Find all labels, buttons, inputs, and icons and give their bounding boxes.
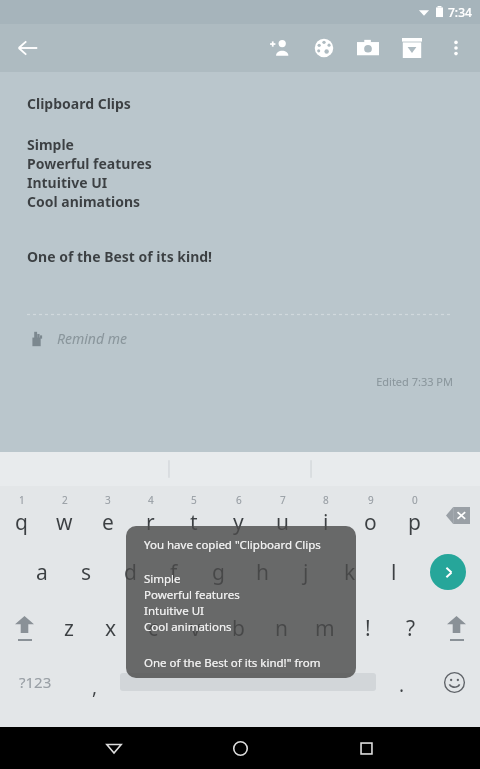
button[interactable]: 6: [216, 486, 260, 544]
staticText: n: [275, 614, 288, 643]
staticText: 0: [412, 493, 418, 507]
button[interactable]: Recents: [342, 727, 390, 769]
staticText: 2: [62, 493, 68, 507]
staticText: You have copied "Clipboard Clips: [144, 537, 321, 553]
staticText: 5: [191, 493, 197, 507]
staticText: u: [276, 508, 289, 537]
button[interactable]: Back: [90, 727, 138, 769]
button[interactable]: 1: [0, 486, 43, 544]
staticText: 7: [280, 493, 286, 507]
button[interactable]: Emoji: [428, 656, 480, 708]
staticText: a: [36, 558, 48, 587]
staticText: w: [56, 508, 73, 537]
staticText: 7:34: [448, 4, 472, 20]
staticText: 3: [105, 493, 111, 507]
staticText: s: [81, 558, 92, 587]
button[interactable]: f: [152, 544, 196, 600]
button[interactable]: ?123: [0, 656, 70, 708]
staticText: Remind me: [57, 329, 127, 348]
button[interactable]: z: [48, 600, 90, 656]
button[interactable]: k: [328, 544, 372, 600]
button[interactable]: b: [217, 600, 260, 656]
staticText: Powerful features: [27, 154, 152, 173]
staticText: t: [190, 508, 198, 537]
staticText: x: [105, 614, 117, 643]
staticText: Powerful features: [144, 587, 240, 603]
staticText: c: [148, 614, 159, 643]
button[interactable]: Delete: [436, 486, 480, 544]
button[interactable]: 5: [172, 486, 216, 544]
button[interactable]: s: [64, 544, 108, 600]
staticText: d: [124, 558, 137, 587]
staticText: Simple: [144, 571, 181, 587]
button[interactable]: ?: [389, 600, 432, 656]
staticText: f: [170, 558, 178, 587]
button[interactable]: n: [260, 600, 303, 656]
staticText: .: [399, 672, 405, 698]
staticText: Simple: [27, 135, 74, 154]
button[interactable]: Enter: [416, 544, 480, 600]
staticText: Edited 7:33 PM: [27, 374, 453, 389]
staticText: h: [256, 558, 269, 587]
button[interactable]: Remind me: [27, 329, 127, 348]
button[interactable]: Add collaborator: [258, 26, 302, 70]
button[interactable]: x: [90, 600, 132, 656]
button[interactable]: j: [284, 544, 328, 600]
button[interactable]: a: [20, 544, 64, 600]
button[interactable]: !: [346, 600, 389, 656]
button[interactable]: Space: [120, 656, 376, 708]
button[interactable]: 2: [43, 486, 86, 544]
staticText: l: [391, 558, 397, 587]
staticText: q: [15, 508, 28, 537]
staticText: Intuitive UI: [144, 603, 204, 619]
button[interactable]: h: [240, 544, 284, 600]
button[interactable]: l: [372, 544, 416, 600]
staticText: ?: [406, 614, 416, 643]
button[interactable]: m: [303, 600, 346, 656]
staticText: z: [64, 614, 74, 643]
button[interactable]: v: [174, 600, 217, 656]
button[interactable]: 3: [86, 486, 129, 544]
staticText: 9: [368, 493, 374, 507]
button[interactable]: Shift: [0, 600, 48, 656]
button[interactable]: 7: [260, 486, 304, 544]
staticText: ,: [92, 674, 98, 700]
staticText: Cool animations: [27, 192, 141, 211]
staticText: One of the Best of its kind!: [27, 247, 213, 266]
staticText: Cool animations: [144, 619, 232, 635]
button[interactable]: Home: [216, 727, 264, 769]
staticText: Clipboard Clips: [27, 94, 131, 113]
button[interactable]: 9: [348, 486, 392, 544]
button[interactable]: Back: [8, 28, 48, 68]
button[interactable]: g: [196, 544, 240, 600]
button[interactable]: Shift: [432, 600, 480, 656]
staticText: 4: [148, 493, 154, 507]
button[interactable]: Add image: [346, 26, 390, 70]
button[interactable]: 4: [129, 486, 172, 544]
button[interactable]: .: [376, 656, 428, 708]
button[interactable]: More options: [434, 26, 478, 70]
button[interactable]: c: [132, 600, 174, 656]
button[interactable]: d: [108, 544, 152, 600]
staticText: v: [190, 614, 201, 643]
staticText: j: [303, 558, 309, 587]
staticText: 6: [236, 493, 242, 507]
button[interactable]: Change color: [302, 26, 346, 70]
staticText: b: [232, 614, 245, 643]
staticText: ?123: [19, 672, 52, 692]
staticText: m: [315, 614, 335, 643]
staticText: 1: [19, 493, 25, 507]
staticText: r: [146, 508, 155, 537]
staticText: i: [323, 508, 329, 537]
staticText: p: [408, 508, 421, 537]
staticText: k: [344, 558, 356, 587]
staticText: o: [364, 508, 377, 537]
staticText: g: [212, 558, 225, 587]
button[interactable]: 8: [304, 486, 348, 544]
button[interactable]: Archive: [390, 26, 434, 70]
staticText: !: [365, 614, 371, 643]
button[interactable]: ,: [70, 656, 120, 708]
button[interactable]: 0: [392, 486, 436, 544]
staticText: e: [102, 508, 114, 537]
staticText: Intuitive UI: [27, 173, 108, 192]
